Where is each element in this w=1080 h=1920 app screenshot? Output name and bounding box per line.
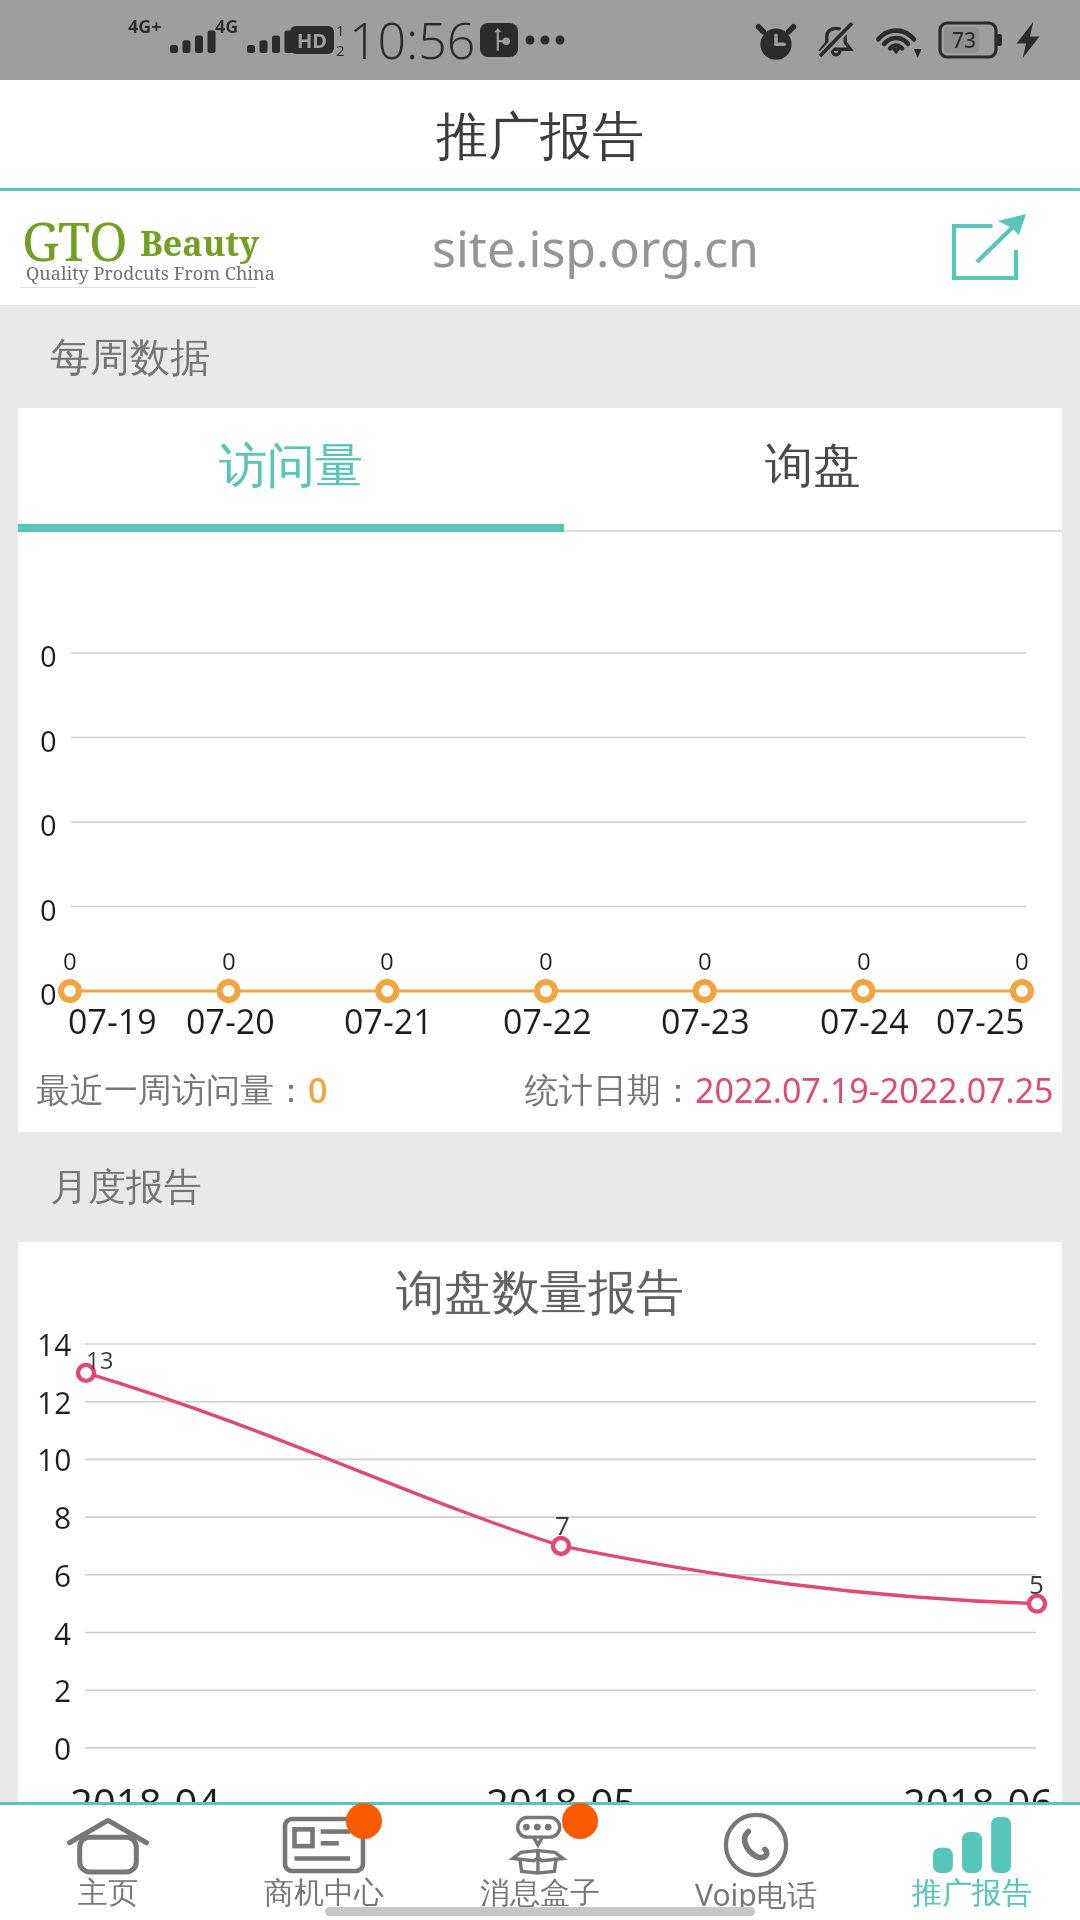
staticText: 访问量 [219, 436, 363, 496]
staticText: 07-19 [68, 998, 157, 1044]
staticText: 07-22 [503, 998, 592, 1044]
staticText: 询盘数量报告 [396, 1263, 684, 1323]
staticText: 商机中心 [264, 1874, 384, 1912]
staticText: GTO [22, 205, 128, 276]
button[interactable]: 访问量 [18, 408, 564, 524]
staticText: 13 [86, 1343, 114, 1376]
staticText: 8 [54, 1497, 72, 1538]
staticText: 7 [555, 1507, 570, 1542]
staticText: 07-20 [186, 998, 275, 1044]
staticText: 10 [37, 1439, 72, 1480]
staticText: 0 [857, 944, 871, 977]
staticText: 73 [952, 26, 977, 55]
staticText: 4 [54, 1613, 72, 1654]
staticText: Beauty [140, 220, 259, 266]
staticText: 0 [40, 974, 57, 1013]
staticText: 2 [336, 40, 345, 60]
staticText: 07-24 [820, 998, 909, 1044]
staticText: 6 [54, 1555, 72, 1596]
staticText: 4G [215, 14, 239, 39]
staticText: 14 [37, 1324, 72, 1365]
staticText: 0 [698, 944, 712, 977]
button[interactable]: 主页 [0, 1805, 216, 1920]
staticText: 07-23 [661, 998, 750, 1044]
staticText: 2018-06 [903, 1775, 1054, 1829]
staticText: 0 [1015, 944, 1029, 977]
staticText: 最近一周访问量： [36, 1069, 308, 1112]
staticText: 0 [63, 944, 77, 977]
staticText: 2018-04 [70, 1775, 221, 1829]
staticText: 0 [40, 890, 57, 929]
staticText: 0 [222, 944, 236, 977]
button[interactable]: 商机中心 [216, 1805, 432, 1920]
staticText: 0 [40, 636, 57, 675]
staticText: 0 [539, 944, 553, 977]
staticText: 12 [37, 1382, 72, 1423]
staticText: site.isp.org.cn [432, 214, 759, 282]
staticText: 2 [54, 1670, 72, 1711]
staticText: 0 [40, 721, 57, 760]
staticText: 2018-05 [486, 1775, 637, 1829]
staticText: 主页 [78, 1874, 138, 1912]
button[interactable]: 打开网站 [944, 210, 1040, 286]
staticText: 推广报告 [436, 104, 644, 170]
button[interactable]: 询盘 [564, 408, 1062, 524]
staticText: 4G+ [128, 14, 162, 39]
staticText: 0 [54, 1728, 72, 1769]
staticText: 0 [380, 944, 394, 977]
staticText: 2022.07.19-2022.07.25 [695, 1067, 1054, 1113]
staticText: 询盘 [765, 436, 861, 496]
button[interactable]: 消息盒子 [432, 1805, 648, 1920]
staticText: 统计日期： [525, 1069, 695, 1112]
staticText: 推广报告 [912, 1874, 1032, 1912]
staticText: 10:56 [349, 6, 476, 74]
staticText: Quality Prodcuts From China [26, 261, 275, 286]
staticText: 每周数据 [50, 332, 210, 382]
staticText: 07-25 [936, 998, 1025, 1044]
button[interactable]: Voip电话 [648, 1805, 864, 1920]
button[interactable]: 推广报告 [864, 1805, 1080, 1920]
staticText: 0 [40, 805, 57, 844]
staticText: 消息盒子 [480, 1874, 600, 1912]
staticText: 5 [1029, 1566, 1044, 1601]
staticText: 07-21 [344, 998, 433, 1044]
staticText: 0 [308, 1067, 328, 1113]
staticText: 月度报告 [50, 1163, 202, 1211]
staticText: 1 [336, 20, 345, 40]
staticText: HD [297, 27, 327, 54]
staticText: Voip电话 [695, 1874, 817, 1915]
